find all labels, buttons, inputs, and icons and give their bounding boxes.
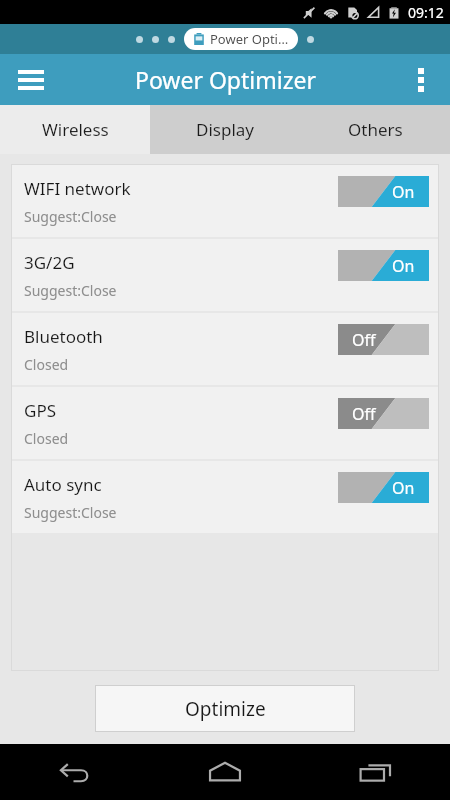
staticText: On — [392, 181, 415, 203]
staticText: Power Opti… — [210, 30, 289, 48]
staticText: Bluetooth — [24, 325, 103, 348]
staticText: 09:12 — [408, 3, 444, 22]
button[interactable]: Bluetooth — [12, 313, 438, 385]
staticText: Power Optimizer — [135, 64, 316, 95]
button[interactable]: Power Opti… — [184, 28, 298, 50]
button[interactable]: Recent apps — [300, 744, 450, 800]
staticText: Suggest:Close — [24, 207, 117, 226]
button[interactable]: 3G/2G — [12, 239, 438, 311]
staticText: Closed — [24, 429, 69, 448]
staticText: Closed — [24, 355, 69, 374]
button[interactable]: Display — [150, 105, 300, 154]
staticText: Others — [348, 118, 403, 141]
staticText: WIFI network — [24, 177, 131, 200]
button[interactable]: Wireless — [0, 105, 150, 154]
staticText: On — [392, 477, 415, 499]
staticText: Off — [352, 403, 376, 425]
staticText: On — [392, 255, 415, 277]
button[interactable]: Off — [338, 398, 429, 429]
button[interactable]: Back — [0, 744, 150, 800]
staticText: Optimize — [185, 696, 266, 722]
button[interactable]: Home — [150, 744, 300, 800]
button[interactable]: On — [338, 472, 429, 503]
button[interactable]: On — [338, 250, 429, 281]
button[interactable]: Optimize — [95, 685, 355, 732]
button[interactable]: Menu — [10, 59, 52, 101]
button[interactable]: GPS — [12, 387, 438, 459]
staticText: Wireless — [42, 118, 109, 141]
button[interactable]: More options — [400, 59, 442, 101]
button[interactable]: Off — [338, 324, 429, 355]
button[interactable]: Auto sync — [12, 461, 438, 533]
staticText: Auto sync — [24, 473, 102, 496]
staticText: Display — [196, 118, 254, 141]
staticText: Suggest:Close — [24, 281, 117, 300]
staticText: Off — [352, 329, 376, 351]
button[interactable]: On — [338, 176, 429, 207]
button[interactable]: Others — [300, 105, 450, 154]
staticText: GPS — [24, 399, 56, 422]
staticText: 3G/2G — [24, 251, 75, 274]
button[interactable]: WIFI network — [12, 165, 438, 237]
staticText: Suggest:Close — [24, 503, 117, 522]
